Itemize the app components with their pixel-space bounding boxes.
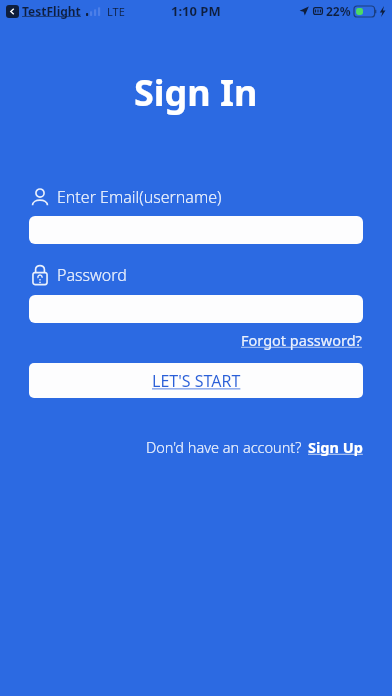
staticText: Forgot password? [241, 330, 362, 350]
staticText: Sign Up [308, 437, 363, 457]
button[interactable] [29, 295, 363, 323]
staticText: Don'd have an account? [146, 437, 302, 457]
button[interactable]: Sign Up [308, 437, 363, 457]
staticText: LET'S START [152, 370, 241, 392]
staticText: Sign In [134, 68, 258, 117]
button[interactable] [29, 216, 363, 244]
button[interactable]: Back to TestFlight [6, 5, 19, 18]
staticText: LTE [107, 4, 125, 19]
button[interactable]: Forgot password? [240, 329, 363, 351]
staticText: TestFlight [22, 3, 81, 19]
staticText: Enter Email(username) [57, 186, 222, 208]
staticText: 1:10 PM [171, 2, 221, 20]
staticText: 22% [326, 3, 351, 19]
staticText: Password [57, 264, 127, 286]
button[interactable]: LET'S START [29, 363, 363, 398]
